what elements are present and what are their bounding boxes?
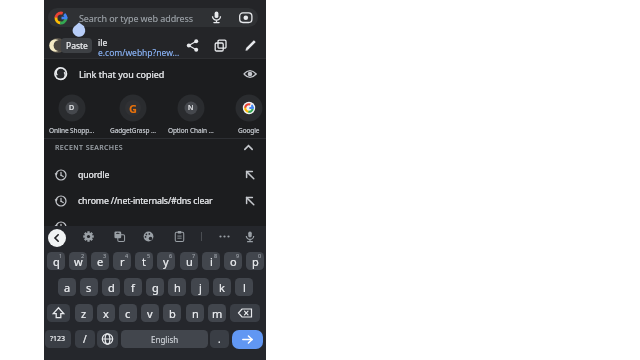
button[interactable]: G bbox=[105, 94, 161, 136]
staticText: s bbox=[86, 280, 92, 295]
staticText: h bbox=[174, 280, 181, 295]
button[interactable]: b bbox=[163, 304, 181, 322]
staticText: Search or type web address bbox=[79, 12, 193, 24]
button[interactable]: x bbox=[97, 304, 115, 322]
staticText: j bbox=[199, 280, 202, 295]
button[interactable]: . bbox=[210, 330, 229, 348]
staticText: 4 bbox=[125, 252, 129, 259]
staticText: w bbox=[74, 254, 83, 269]
button[interactable] bbox=[230, 304, 260, 322]
button[interactable]: p bbox=[246, 252, 264, 270]
button[interactable]: z bbox=[75, 304, 93, 322]
button[interactable]: n bbox=[186, 304, 204, 322]
button[interactable] bbox=[239, 11, 253, 25]
button[interactable]: a bbox=[58, 278, 76, 296]
staticText: r bbox=[120, 254, 125, 269]
button[interactable]: m bbox=[208, 304, 226, 322]
button[interactable] bbox=[83, 231, 94, 242]
button[interactable]: y bbox=[157, 252, 175, 270]
staticText: b bbox=[169, 306, 176, 321]
button[interactable]: ?123 bbox=[45, 330, 71, 348]
button[interactable]: s bbox=[80, 278, 98, 296]
button[interactable] bbox=[214, 39, 227, 52]
staticText: Google bbox=[238, 126, 260, 135]
button[interactable] bbox=[114, 231, 125, 242]
button[interactable] bbox=[210, 11, 223, 24]
button[interactable]: u bbox=[180, 252, 198, 270]
staticText: l bbox=[243, 280, 246, 295]
staticText: k bbox=[219, 280, 225, 295]
staticText: q bbox=[53, 254, 60, 269]
staticText: D bbox=[69, 103, 75, 113]
staticText: i bbox=[210, 254, 213, 269]
button[interactable]: v bbox=[141, 304, 159, 322]
staticText: Option Chain ... bbox=[168, 126, 214, 135]
staticText: 0 bbox=[258, 252, 262, 259]
staticText: 6 bbox=[169, 252, 173, 259]
staticText: 8 bbox=[214, 252, 218, 259]
button[interactable]: i bbox=[202, 252, 220, 270]
staticText: G bbox=[129, 101, 137, 115]
staticText: x bbox=[103, 306, 109, 321]
button[interactable]: Google bbox=[221, 94, 277, 136]
staticText: v bbox=[147, 306, 153, 321]
button[interactable]: Link that you copied bbox=[44, 58, 266, 88]
staticText: chrome //net-internals/#dns clear bbox=[78, 195, 213, 207]
staticText: Link that you copied bbox=[79, 68, 165, 80]
button[interactable]: f bbox=[124, 278, 142, 296]
button[interactable]: g bbox=[146, 278, 164, 296]
button[interactable] bbox=[244, 39, 257, 52]
staticText: e bbox=[97, 254, 104, 269]
button[interactable] bbox=[48, 229, 66, 247]
staticText: a bbox=[64, 280, 71, 295]
staticText: z bbox=[81, 306, 87, 321]
staticText: t bbox=[142, 254, 146, 269]
staticText: English bbox=[151, 334, 179, 345]
button[interactable]: q bbox=[47, 252, 65, 270]
staticText: 9 bbox=[236, 252, 240, 259]
button[interactable] bbox=[232, 330, 263, 349]
staticText: f bbox=[131, 280, 135, 295]
button[interactable]: r bbox=[113, 252, 131, 270]
button[interactable]: k bbox=[213, 278, 231, 296]
button[interactable] bbox=[47, 304, 70, 322]
button[interactable]: quordle bbox=[44, 162, 266, 188]
staticText: 3 bbox=[103, 252, 107, 259]
staticText: Paste bbox=[66, 40, 88, 52]
button[interactable] bbox=[97, 330, 118, 348]
button[interactable]: Paste bbox=[61, 38, 92, 53]
button[interactable]: c bbox=[119, 304, 137, 322]
button[interactable]: h bbox=[168, 278, 186, 296]
button[interactable] bbox=[244, 231, 256, 243]
button[interactable]: e bbox=[91, 252, 109, 270]
button[interactable] bbox=[218, 230, 231, 243]
button[interactable]: o bbox=[224, 252, 242, 270]
button[interactable]: t bbox=[135, 252, 153, 270]
button[interactable]: D bbox=[44, 94, 100, 136]
staticText: u bbox=[186, 254, 193, 269]
staticText: GadgetGrasp ... bbox=[110, 126, 156, 135]
staticText: 7 bbox=[192, 252, 196, 259]
button[interactable]: English bbox=[121, 330, 208, 348]
button[interactable]: chrome //net-internals/#dns clear bbox=[44, 188, 266, 214]
staticText: N bbox=[188, 103, 194, 113]
button[interactable] bbox=[186, 39, 199, 52]
button[interactable]: j bbox=[191, 278, 209, 296]
staticText: . bbox=[218, 332, 221, 346]
staticText: e.com/webhp?new... bbox=[98, 47, 180, 59]
button[interactable]: d bbox=[102, 278, 120, 296]
button[interactable]: w bbox=[69, 252, 87, 270]
staticText: o bbox=[230, 254, 237, 269]
staticText: 1 bbox=[59, 252, 63, 259]
button[interactable]: Search or type web address bbox=[48, 8, 258, 27]
button[interactable]: l bbox=[235, 278, 253, 296]
button[interactable] bbox=[243, 142, 254, 153]
staticText: ?123 bbox=[50, 334, 66, 344]
button[interactable]: N bbox=[163, 94, 219, 136]
button[interactable]: / bbox=[75, 330, 95, 348]
button[interactable] bbox=[143, 231, 154, 242]
staticText: / bbox=[83, 332, 87, 346]
staticText: 5 bbox=[147, 252, 151, 259]
button[interactable] bbox=[174, 231, 185, 242]
staticText: n bbox=[192, 306, 199, 321]
